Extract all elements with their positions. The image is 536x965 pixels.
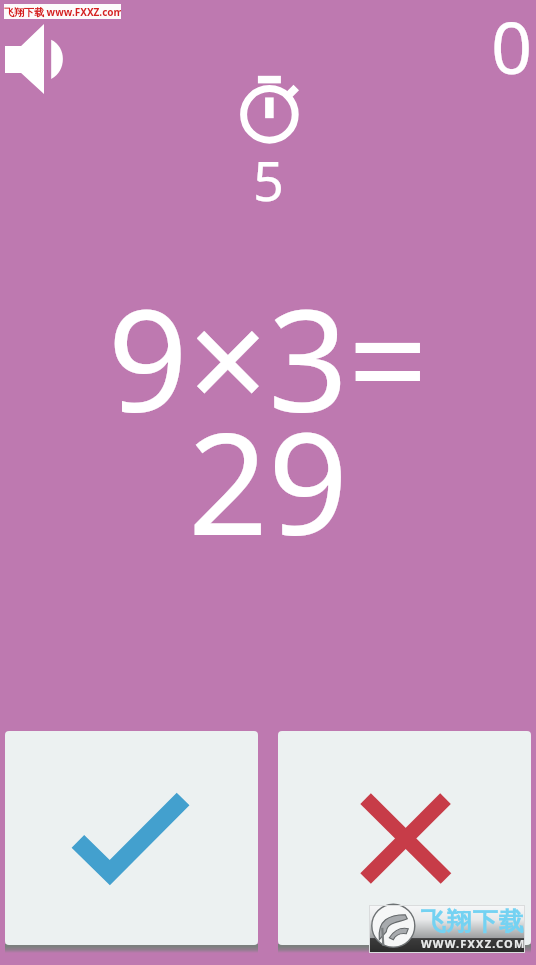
- staticText: 5: [253, 143, 284, 217]
- staticText: 飞翔下载 www.FXXZ.com: [4, 5, 121, 19]
- staticText: WWW.FXXZ.COM: [421, 936, 526, 951]
- button[interactable]: Correct: [5, 731, 258, 945]
- staticText: 0: [491, 0, 533, 95]
- staticText: 飞翔下载: [420, 906, 524, 937]
- button[interactable]: Sound on: [5, 24, 65, 94]
- staticText: 9×3= 29: [0, 262, 536, 576]
- button[interactable]: Wrong: [278, 731, 531, 945]
